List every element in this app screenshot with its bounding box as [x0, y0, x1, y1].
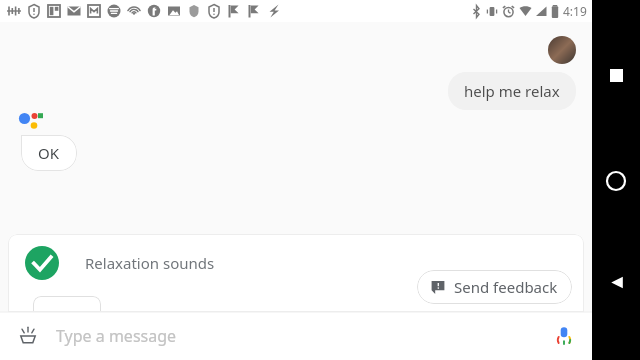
button[interactable]: Voice input: [546, 318, 582, 354]
button[interactable]: Type a message: [56, 312, 177, 360]
button[interactable]: help me relax: [448, 72, 576, 110]
button[interactable]: Home: [598, 163, 634, 199]
button[interactable]: Recents: [599, 58, 633, 92]
staticText: Relaxation sounds: [85, 253, 215, 273]
staticText: Type a message: [56, 325, 177, 347]
button[interactable]: OK: [21, 135, 77, 171]
staticText: help me relax: [464, 81, 560, 101]
button[interactable]: Relaxation sounds: [8, 234, 584, 312]
staticText: Send feedback: [454, 277, 558, 297]
button[interactable]: Profile: [548, 36, 576, 64]
button[interactable]: Google Lens: [10, 318, 46, 354]
staticText: OK: [38, 143, 60, 163]
button[interactable]: Send feedback: [417, 270, 572, 304]
button[interactable]: Back: [599, 265, 633, 299]
staticText: 4:19: [563, 3, 587, 19]
